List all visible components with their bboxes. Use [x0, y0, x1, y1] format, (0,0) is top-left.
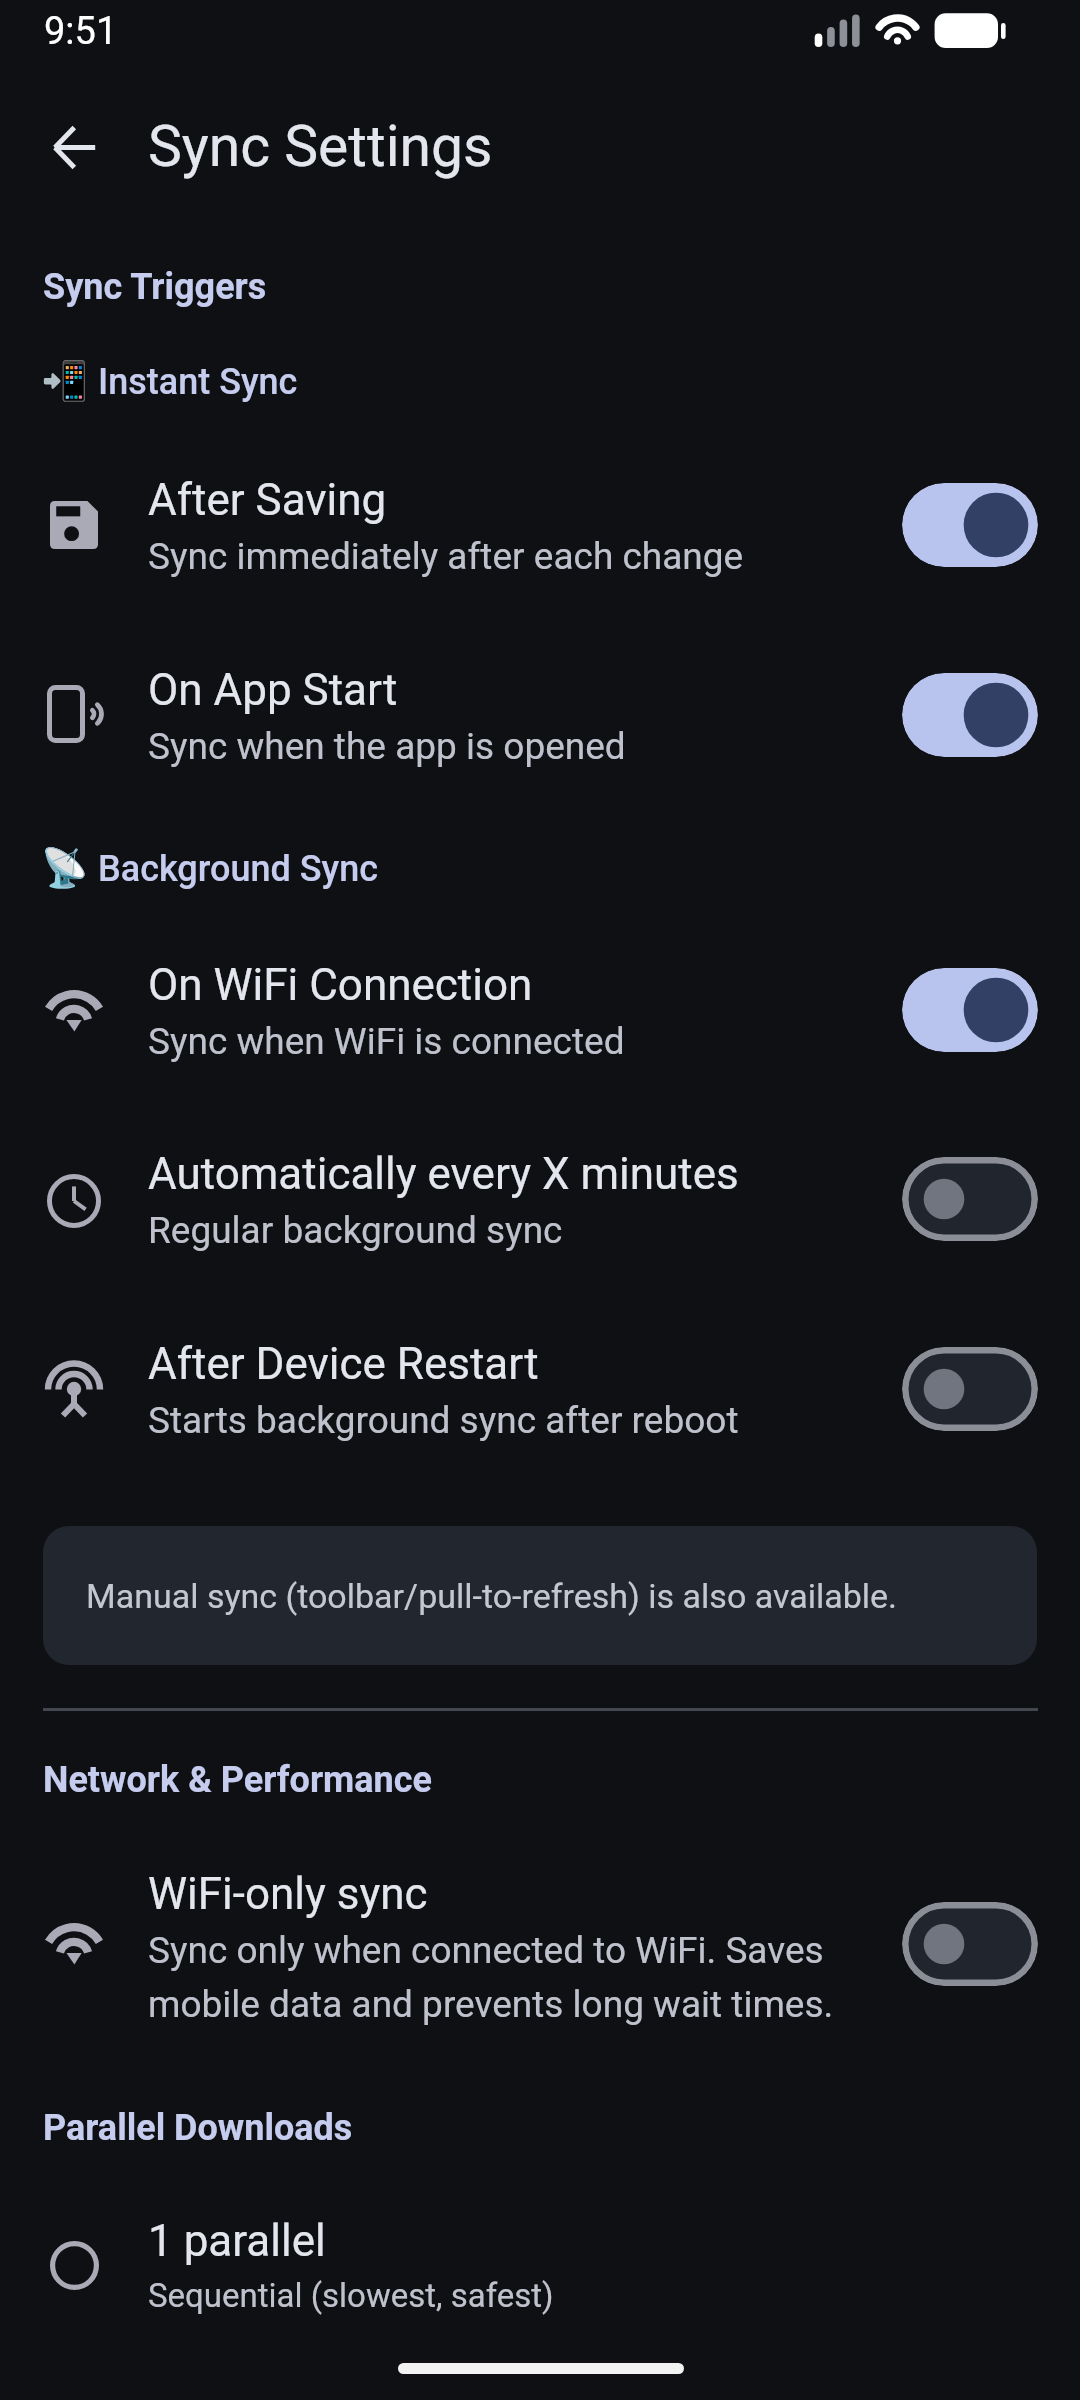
button[interactable]	[0, 1123, 1080, 1273]
staticText: 9:51	[44, 9, 118, 54]
button[interactable]: On App Start toggle	[902, 673, 1038, 757]
staticText: Sync when the app is opened	[148, 725, 626, 768]
staticText: 📲	[41, 359, 89, 404]
staticText: After Saving	[148, 474, 387, 526]
staticText: Sync only when connected to WiFi. Saves …	[148, 1920, 883, 2028]
staticText: Sync Settings	[148, 113, 493, 180]
staticText: Background Sync	[98, 848, 379, 890]
button[interactable]: Automatically every X minutes toggle	[902, 1157, 1038, 1241]
staticText: Network & Performance	[43, 1759, 432, 1801]
staticText: WiFi-only sync	[148, 1868, 428, 1920]
staticText: Sync Triggers	[43, 266, 267, 308]
staticText: 📡	[41, 846, 89, 891]
staticText: Sequential (slowest, safest)	[148, 2276, 554, 2315]
staticText: Manual sync (toolbar/pull-to-refresh) is…	[86, 1576, 898, 1616]
button[interactable]: After Device Restart toggle	[902, 1347, 1038, 1431]
staticText: Parallel Downloads	[43, 2107, 353, 2149]
staticText: Regular background sync	[148, 1209, 563, 1252]
staticText: Sync when WiFi is connected	[148, 1020, 625, 1063]
staticText: After Device Restart	[148, 1338, 539, 1390]
button[interactable]: On WiFi Connection toggle	[902, 968, 1038, 1052]
button[interactable]	[0, 2190, 1080, 2340]
button[interactable]: Back	[38, 111, 111, 184]
button[interactable]	[0, 1313, 1080, 1463]
staticText: 1 parallel	[148, 2215, 326, 2267]
button[interactable]: After Saving toggle	[902, 483, 1038, 567]
button[interactable]	[0, 934, 1080, 1084]
staticText: On App Start	[148, 664, 398, 716]
staticText: Automatically every X minutes	[148, 1148, 739, 1200]
button[interactable]	[0, 449, 1080, 599]
button[interactable]	[0, 1854, 1080, 2044]
staticText: Instant Sync	[98, 361, 298, 403]
staticText: Starts background sync after reboot	[148, 1399, 739, 1442]
staticText: On WiFi Connection	[148, 959, 533, 1011]
button[interactable]	[0, 639, 1080, 789]
staticText: Sync immediately after each change	[148, 535, 744, 578]
button[interactable]: WiFi-only sync toggle	[902, 1902, 1038, 1986]
